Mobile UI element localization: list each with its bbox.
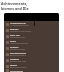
staticText: Mobs: [10, 39, 17, 42]
staticText: Recipes and uses: [10, 60, 27, 63]
button[interactable]: Achievements: [4, 21, 59, 27]
staticText: Books and levels: [10, 54, 26, 57]
button[interactable]: Enchantments: [4, 51, 59, 57]
staticText: Every block listed: [10, 66, 27, 69]
button[interactable]: Potions: [4, 45, 59, 51]
staticText: All achievements list: [10, 24, 30, 27]
button[interactable]: Commands: [4, 69, 59, 72]
staticText: Potions: [10, 45, 19, 48]
staticText: Crafting: [10, 57, 20, 60]
button[interactable]: Blocks: [4, 63, 59, 69]
staticText: Commands: [10, 69, 23, 72]
button[interactable]: Mobs: [4, 39, 59, 45]
staticText: biomes and IDs: [1, 6, 29, 11]
staticText: Complete ID list: [10, 36, 25, 39]
staticText: Brewing recipes: [10, 48, 25, 51]
staticText: Hostile and passive: [10, 42, 29, 45]
staticText: Overworld and Nether: [10, 30, 32, 33]
staticText: Enchantments: [10, 51, 27, 54]
button[interactable]: Item IDs: [4, 33, 59, 39]
staticText: Achievements: [10, 21, 26, 24]
staticText: Biomes: [10, 27, 19, 30]
staticText: Item IDs: [10, 33, 20, 36]
staticText: Blocks: [10, 63, 18, 66]
button[interactable]: Biomes: [4, 27, 59, 33]
button[interactable]: Crafting: [4, 57, 59, 63]
staticText: Achievements,: [1, 1, 28, 6]
